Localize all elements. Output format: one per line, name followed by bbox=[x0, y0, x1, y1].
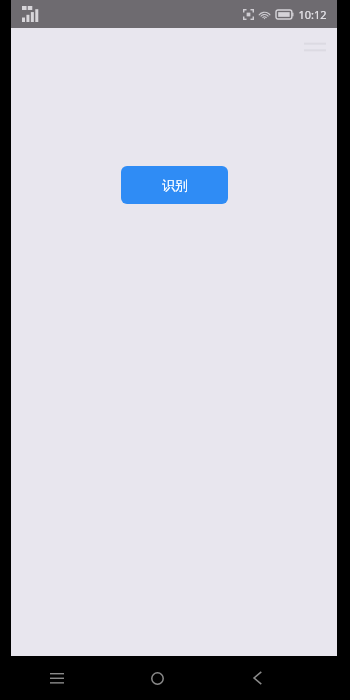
button[interactable]: Home bbox=[134, 656, 180, 700]
button[interactable]: Recent apps bbox=[34, 656, 80, 700]
staticText: 识别 bbox=[162, 177, 188, 193]
staticText: 10:12 bbox=[298, 7, 327, 22]
button[interactable]: Menu bbox=[301, 36, 329, 56]
button[interactable]: 识别 bbox=[121, 166, 228, 204]
button[interactable]: Back bbox=[234, 656, 280, 700]
